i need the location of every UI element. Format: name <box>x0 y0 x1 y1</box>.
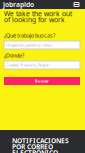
button[interactable]: Buscar <box>4 77 80 85</box>
staticText: of looking for work <box>4 15 65 24</box>
button[interactable]: Ocupación, palabras clave... <box>4 41 80 49</box>
staticText: Ocupación, palabras clave... <box>6 42 54 48</box>
staticText: ELECTRÓNICO <box>12 148 58 153</box>
staticText: ¿Qué trabajo buscas? <box>4 32 55 39</box>
staticText: Ciudad, Provincia, Región <box>6 62 49 68</box>
button[interactable]: jobrapido <box>0 0 34 9</box>
staticText: NOTIFICACIONES <box>12 136 69 145</box>
staticText: jobrapido <box>3 0 34 9</box>
staticText: Buscar <box>35 78 49 84</box>
staticText: POR CORREO <box>12 142 53 151</box>
button[interactable]: Menu <box>73 1 85 7</box>
button[interactable]: Ciudad, Provincia, Región <box>4 61 80 69</box>
staticText: ¿Dónde? <box>4 52 24 59</box>
staticText: We take the work out <box>4 9 72 18</box>
